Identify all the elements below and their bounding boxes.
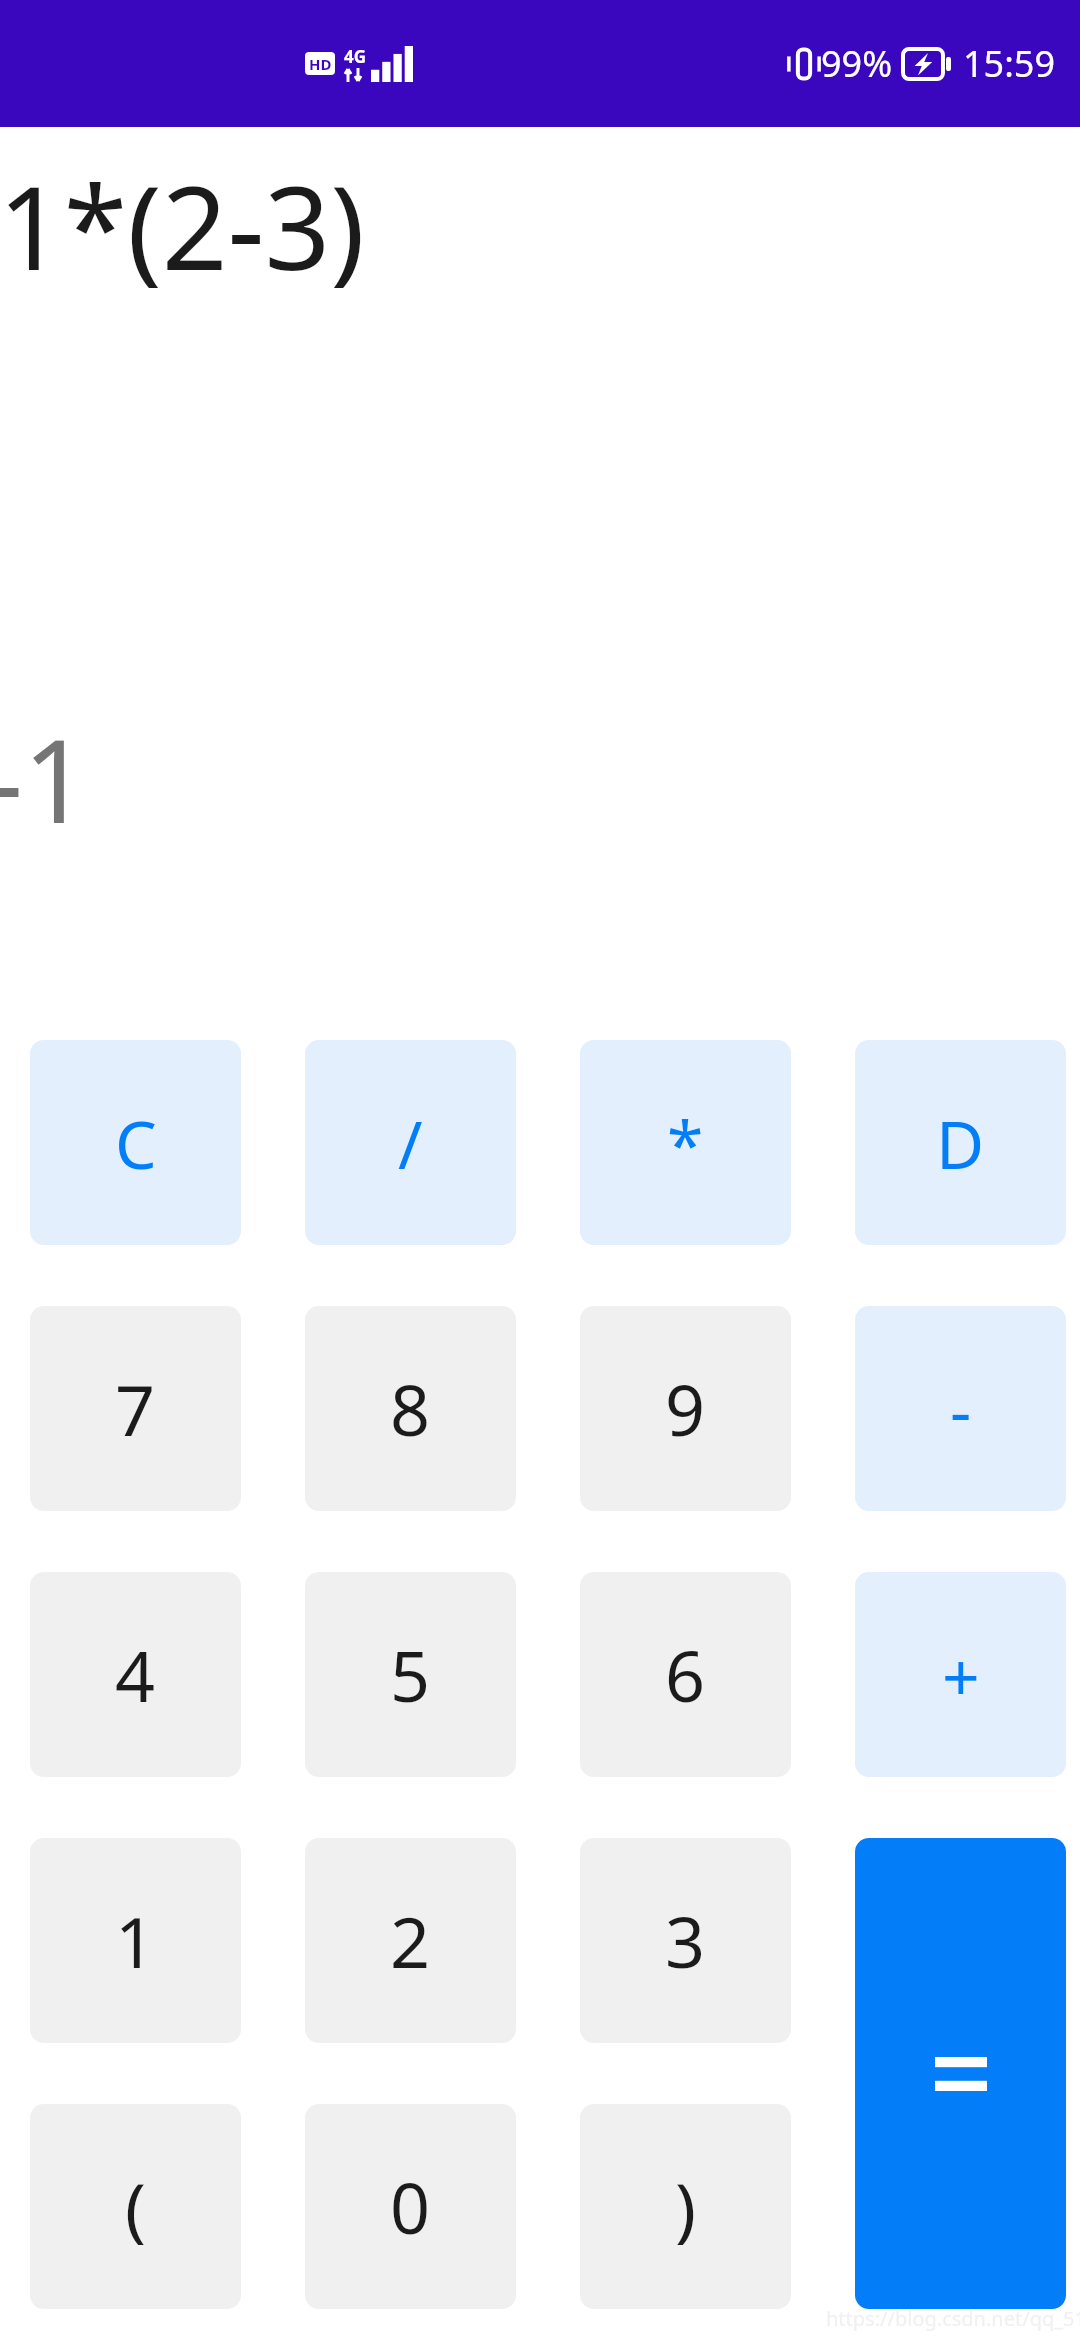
button[interactable]: - [855, 1306, 1066, 1511]
button[interactable]: 1 [30, 1838, 241, 2043]
staticText: -1 [0, 700, 89, 857]
button[interactable]: 5 [305, 1572, 516, 1777]
staticText: C [115, 1098, 157, 1188]
staticText: 8 [390, 1361, 431, 1456]
button[interactable]: / [305, 1040, 516, 1245]
staticText: 4G [344, 45, 367, 68]
staticText: HD [309, 54, 332, 74]
button[interactable]: D [855, 1040, 1066, 1245]
button[interactable]: 8 [305, 1306, 516, 1511]
button[interactable]: 3 [580, 1838, 791, 2043]
button[interactable]: + [855, 1572, 1066, 1777]
staticText: ( [125, 2159, 146, 2254]
staticText: - [950, 1364, 972, 1454]
button[interactable]: Equals [855, 1838, 1066, 2309]
staticText: 3 [665, 1893, 706, 1988]
button[interactable]: 6 [580, 1572, 791, 1777]
staticText: 2 [390, 1893, 431, 1988]
button[interactable]: 9 [580, 1306, 791, 1511]
button[interactable]: 2 [305, 1838, 516, 2043]
staticText: * [667, 1098, 704, 1188]
staticText: ) [675, 2159, 696, 2254]
staticText: 1*(2-3) [0, 147, 365, 304]
button[interactable]: * [580, 1040, 791, 1245]
staticText: 5 [390, 1627, 431, 1722]
staticText: 9 [665, 1361, 706, 1456]
staticText: 7 [115, 1361, 156, 1456]
staticText: 99% [821, 39, 893, 88]
button[interactable]: ) [580, 2104, 791, 2309]
staticText: 15:59 [963, 39, 1056, 88]
staticText: 1 [115, 1893, 156, 1988]
button[interactable]: ( [30, 2104, 241, 2309]
button[interactable]: 7 [30, 1306, 241, 1511]
staticText: / [398, 1098, 423, 1188]
button[interactable]: C [30, 1040, 241, 1245]
button[interactable]: 4 [30, 1572, 241, 1777]
staticText: 0 [390, 2159, 431, 2254]
button[interactable]: 0 [305, 2104, 516, 2309]
staticText: https://blog.csdn.net/qq_51626275 [826, 2305, 1080, 2332]
staticText: + [942, 1630, 980, 1720]
staticText: D [936, 1098, 985, 1188]
staticText: 6 [665, 1627, 706, 1722]
staticText: 4 [115, 1627, 156, 1722]
